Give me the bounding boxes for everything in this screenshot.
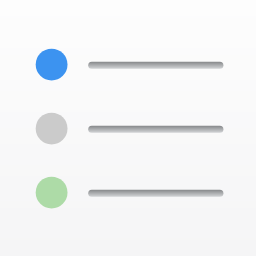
- button[interactable]: Completed: [0, 97, 256, 161]
- button[interactable]: Scheduled: [0, 161, 256, 225]
- button[interactable]: Due today: [0, 33, 256, 97]
